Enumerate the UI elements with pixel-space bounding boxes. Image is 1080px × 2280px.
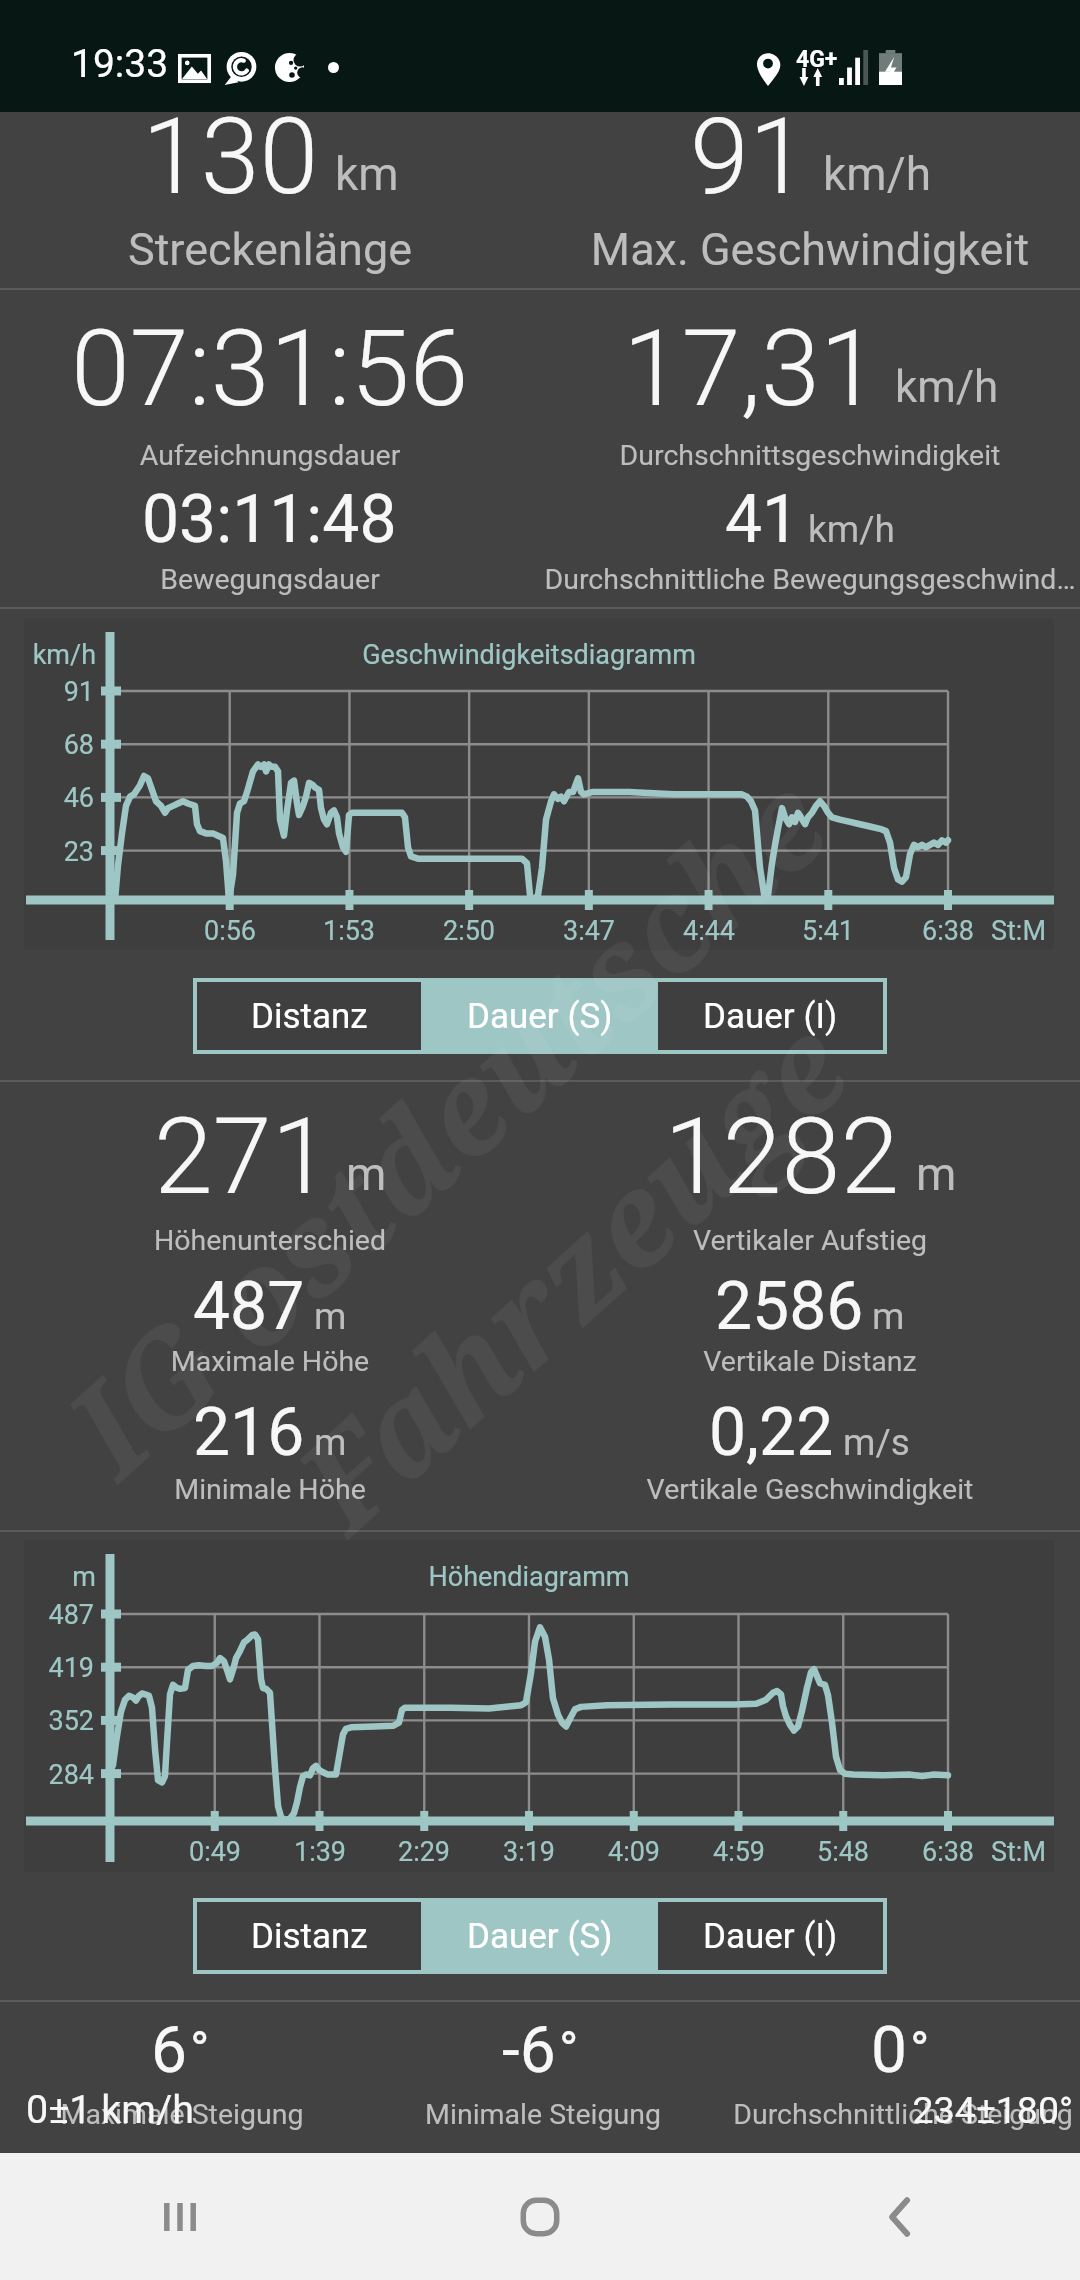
staticText: 419 <box>10 1652 94 1684</box>
staticText: 0,22 <box>709 1394 893 1471</box>
staticText: 4:44 <box>634 915 784 947</box>
staticText: Minimale Steigung <box>93 2098 993 2131</box>
staticText: ° <box>910 2020 989 2081</box>
button[interactable]: Dauer (S) <box>421 1902 658 1970</box>
staticText: m <box>916 1147 1016 1201</box>
staticText: 3:19 <box>454 1836 604 1868</box>
staticText: 17,31 <box>623 307 939 431</box>
staticText: Vertikale Geschwindigkeit <box>360 1473 1080 1506</box>
staticText: Vertikaler Aufstieg <box>360 1224 1080 1257</box>
staticText: ° <box>559 2020 638 2081</box>
staticText: Streckenlänge <box>0 223 720 276</box>
staticText: 91 <box>10 676 94 708</box>
staticText: 46 <box>10 782 94 814</box>
button[interactable]: Recent apps <box>0 2153 360 2280</box>
staticText: Dauer (S) <box>467 996 613 1037</box>
staticText: Minimale Höhe <box>0 1473 720 1506</box>
staticText: 91 <box>690 95 868 219</box>
staticText: IG ostdeutsche <box>28 736 861 1511</box>
staticText: km/h <box>24 639 96 671</box>
staticText: m <box>314 1295 407 1338</box>
staticText: km <box>335 147 458 201</box>
staticText: ° <box>190 2020 269 2081</box>
staticText: Maximale Höhe <box>0 1345 720 1378</box>
staticText: 6:38 <box>873 1836 1023 1868</box>
staticText: 3:47 <box>514 915 664 947</box>
staticText: Dauer (S) <box>467 1916 613 1957</box>
staticText: 0±1 km/h <box>26 2086 426 2132</box>
button[interactable]: Dauer (I) <box>658 982 883 1050</box>
staticText: Aufzeichnungsdauer <box>0 439 720 472</box>
staticText: 1:53 <box>274 915 424 947</box>
staticText: 2:50 <box>394 915 544 947</box>
staticText: m <box>314 1421 407 1464</box>
staticText: 6:38 <box>873 915 1023 947</box>
staticText: 0:56 <box>155 915 305 947</box>
staticText: Durchschnittliche Bewegungsgeschwind… <box>530 563 1080 596</box>
button[interactable]: Distanz <box>197 982 421 1050</box>
button[interactable]: Dauer (S) <box>421 982 658 1050</box>
staticText: 4:09 <box>559 1836 709 1868</box>
staticText: Höhenunterschied <box>0 1224 720 1257</box>
staticText: Fahrzeuge <box>258 979 882 1566</box>
staticText: 4:59 <box>664 1836 814 1868</box>
staticText: m/s <box>843 1421 971 1464</box>
staticText: 1:39 <box>245 1836 395 1868</box>
staticText: -6 <box>502 2013 616 2088</box>
staticText: m <box>872 1295 965 1338</box>
staticText: Höhendiagramm <box>109 1561 949 1593</box>
staticText: Bewegungsdauer <box>0 563 720 596</box>
staticText: 4G+ <box>796 46 838 73</box>
staticText: Vertikale Distanz <box>360 1345 1080 1378</box>
staticText: 2:29 <box>349 1836 499 1868</box>
staticText: m <box>346 1147 446 1201</box>
staticText: St:M <box>991 915 1080 947</box>
staticText: Dauer (I) <box>703 1916 838 1957</box>
staticText: Durchschnittliche Steigung <box>453 2098 1080 2131</box>
staticText: 5:48 <box>768 1836 918 1868</box>
staticText: 130 <box>142 95 379 219</box>
staticText: 216 <box>193 1394 364 1471</box>
staticText: 487 <box>193 1268 364 1345</box>
staticText: Maximale Steigung <box>0 2098 632 2131</box>
staticText: 19:33 <box>71 41 169 87</box>
button[interactable]: Home <box>360 2153 720 2280</box>
staticText: 2586 <box>715 1268 923 1345</box>
staticText: 0 <box>871 2013 967 2088</box>
staticText: Dauer (I) <box>703 996 838 1037</box>
staticText: km/h <box>823 147 990 201</box>
staticText: 352 <box>10 1705 94 1737</box>
staticText: m <box>24 1561 96 1593</box>
staticText: Distanz <box>251 996 368 1037</box>
button[interactable]: Back <box>720 2153 1080 2280</box>
staticText: 487 <box>10 1599 94 1631</box>
staticText: Durchschnittsgeschwindigkeit <box>360 439 1080 472</box>
staticText: 23 <box>10 836 94 868</box>
staticText: Distanz <box>251 1916 368 1957</box>
staticText: 0:49 <box>140 1836 290 1868</box>
staticText: 284 <box>10 1759 94 1791</box>
staticText: Max. Geschwindigkeit <box>360 223 1080 276</box>
staticText: 07:31:56 <box>71 307 529 431</box>
button[interactable]: Dauer (I) <box>658 1902 883 1970</box>
staticText: St:M <box>991 1836 1080 1868</box>
staticText: km/h <box>895 361 1057 413</box>
staticText: 271 <box>154 1095 391 1219</box>
staticText: km/h <box>808 508 955 551</box>
staticText: 1282 <box>664 1095 960 1219</box>
staticText: 234±180° <box>673 2088 1073 2132</box>
staticText: 5:41 <box>753 915 903 947</box>
staticText: 03:11:48 <box>142 481 458 558</box>
staticText: 6 <box>151 2013 247 2088</box>
staticText: Geschwindigkeitsdiagramm <box>109 639 949 671</box>
staticText: 68 <box>10 729 94 761</box>
staticText: 41 <box>725 481 859 558</box>
button[interactable]: Distanz <box>197 1902 421 1970</box>
